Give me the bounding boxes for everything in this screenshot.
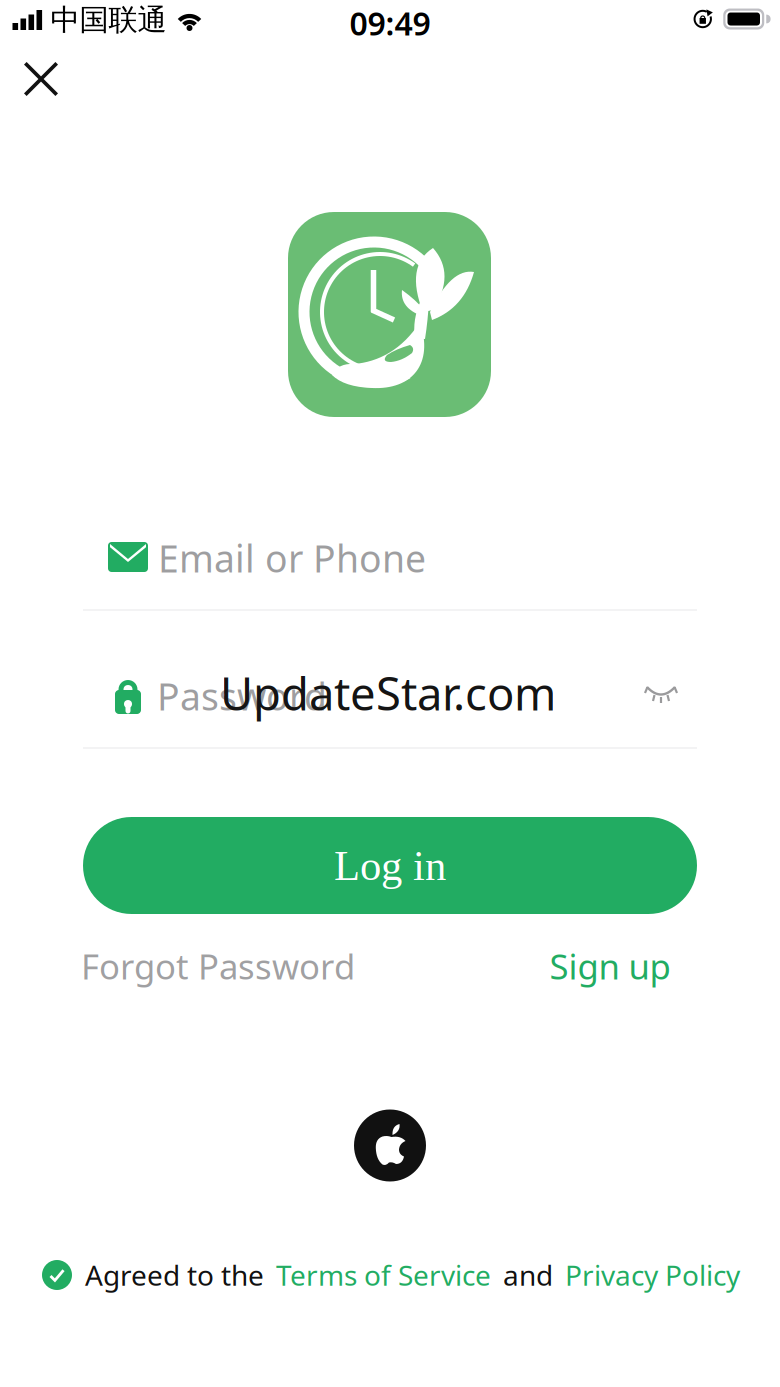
staticText: 09:49 <box>349 2 430 44</box>
button[interactable]: Close <box>10 48 72 110</box>
staticText: Terms of Service <box>276 1256 491 1294</box>
staticText: Forgot Password <box>81 943 355 989</box>
staticText: and <box>503 1256 553 1294</box>
button[interactable]: Forgot Password <box>69 931 367 1001</box>
staticText: Privacy Policy <box>565 1256 740 1294</box>
staticText: Agreed to the <box>85 1256 264 1294</box>
staticText: UpdateStar.com <box>220 663 556 723</box>
button[interactable]: Sign in with Apple <box>354 1109 426 1181</box>
button[interactable]: Log in <box>83 817 697 914</box>
staticText: Email or Phone <box>158 533 426 583</box>
staticText: Log in <box>334 842 446 889</box>
staticText: Sign up <box>549 943 670 989</box>
button[interactable]: Sign up <box>537 931 682 1001</box>
button[interactable]: Agree to terms <box>42 1260 72 1290</box>
button[interactable]: Terms of Service <box>264 1256 491 1294</box>
button[interactable]: Show password <box>632 672 690 716</box>
staticText: Password <box>157 671 327 721</box>
button[interactable]: Privacy Policy <box>553 1256 740 1294</box>
staticText: 中国联通 <box>50 2 166 38</box>
